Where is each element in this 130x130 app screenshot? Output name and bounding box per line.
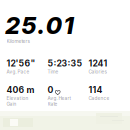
staticText: 5:23:35 [47,58,82,68]
staticText: Cadence [88,95,109,101]
staticText: 406 m [6,84,34,95]
staticText: 0 [47,84,53,95]
staticText: 114 [88,84,102,95]
staticText: 1241 [88,58,107,68]
staticText: Avg. Heart Rate [47,95,71,107]
staticText: Time [47,69,58,75]
staticText: Avg. Pace [6,69,29,75]
staticText: Calories [88,69,106,75]
staticText: Kilometers [6,38,29,44]
staticText: 12'56" [6,58,35,68]
staticText: 25.01 [5,11,73,40]
staticText: Elevation Gain [6,95,28,107]
